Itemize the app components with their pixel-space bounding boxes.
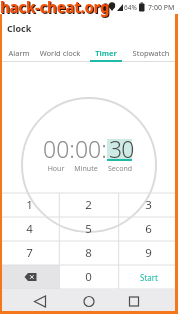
staticText: hack-cheat.org <box>0 0 120 17</box>
staticText: Minute <box>66 164 106 174</box>
button[interactable]: Timer <box>86 40 126 62</box>
staticText: Hour <box>36 164 76 174</box>
staticText: World clock <box>34 48 86 58</box>
button[interactable] <box>0 265 59 289</box>
staticText: 7:00 PM <box>148 3 178 13</box>
staticText: Timer <box>86 48 126 58</box>
button[interactable]: 5 <box>59 217 118 241</box>
staticText: Clock <box>7 22 67 34</box>
staticText: Start <box>140 272 158 283</box>
staticText: 3 <box>145 197 152 213</box>
staticText: 8 <box>85 245 92 261</box>
staticText: Stopwatch <box>126 48 176 58</box>
staticText: Second <box>100 164 140 174</box>
button[interactable]: 7 <box>0 241 59 265</box>
staticText: 30 <box>109 133 134 164</box>
staticText: 4 <box>26 221 33 237</box>
button[interactable]: Alarm <box>2 40 36 62</box>
staticText: Alarm <box>2 48 36 58</box>
staticText: 00:00: <box>43 133 107 164</box>
button[interactable] <box>125 293 143 310</box>
staticText: 7 <box>26 245 33 261</box>
staticText: hack-cheat.org <box>1 0 121 18</box>
staticText: 2 <box>85 197 92 213</box>
button[interactable]: 0 <box>59 265 118 289</box>
button[interactable]: World clock <box>34 40 86 62</box>
button[interactable]: 1 <box>0 193 59 217</box>
button[interactable]: 9 <box>119 241 178 265</box>
staticText: 0 <box>85 269 92 285</box>
button[interactable]: 2 <box>59 193 118 217</box>
button[interactable]: 4 <box>0 217 59 241</box>
button[interactable]: 3 <box>119 193 178 217</box>
staticText: 64% <box>124 3 140 12</box>
button[interactable] <box>80 293 98 310</box>
button[interactable]: 6 <box>119 217 178 241</box>
staticText: 6 <box>145 221 152 237</box>
staticText: 1 <box>26 197 33 213</box>
button[interactable]: Stopwatch <box>126 40 176 62</box>
button[interactable] <box>32 293 50 310</box>
button[interactable]: Start <box>119 265 178 289</box>
button[interactable]: 8 <box>59 241 118 265</box>
staticText: 9 <box>145 245 152 261</box>
staticText: 5 <box>85 221 92 237</box>
